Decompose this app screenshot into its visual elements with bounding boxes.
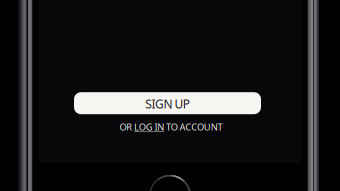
staticText: OR LOG IN TO ACCOUNT [119,121,222,133]
button[interactable]: OR LOG IN TO ACCOUNT [61,120,281,134]
staticText: SIGN UP [145,96,190,112]
button[interactable]: SIGN UP [74,92,261,114]
